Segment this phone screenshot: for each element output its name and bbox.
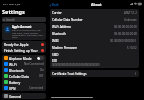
staticText: General	[9, 94, 44, 98]
staticText: 5.10.02	[127, 46, 137, 50]
other: Bluetooth	[4, 68, 8, 72]
staticText: IMEI	[52, 39, 59, 43]
staticText: Certificate Trust Settings	[52, 72, 87, 76]
button[interactable]: VPN	[2, 85, 46, 91]
staticText: Sign in to access iCloud, the App Store,…	[12, 29, 44, 38]
button[interactable]: IMEI	[50, 37, 139, 44]
other: Airplane Mode	[4, 56, 8, 60]
staticText: 9:41 Mon 9 Jun	[3, 2, 21, 5]
staticText: Bluetooth	[9, 68, 40, 72]
staticText: AT&T 51.2	[124, 11, 137, 15]
button[interactable]: Bluetooth	[2, 67, 46, 73]
button[interactable]: Cellular Data	[2, 73, 46, 79]
staticText: 00:00:00:00:00:00	[114, 32, 137, 36]
staticText: Cellular Data Number	[52, 18, 83, 22]
staticText: Wi-Fi Address	[52, 25, 71, 29]
staticText: On	[40, 68, 44, 72]
button[interactable]: Wi-Fi Address	[50, 23, 139, 30]
staticText: SEID	[52, 53, 59, 57]
staticText: Airplane Mode	[9, 56, 37, 60]
staticText: 00 000000 000000 0	[110, 39, 137, 43]
staticText: Bluetooth	[52, 32, 66, 36]
button[interactable]: Airplane Mode	[2, 55, 46, 61]
staticText: Apple Account	[12, 25, 32, 29]
button[interactable]: Apple Account	[2, 23, 46, 40]
staticText: Off	[39, 74, 44, 78]
staticText: 00:00:00:00:00:00	[114, 25, 137, 29]
button[interactable]: Modem Firmware	[50, 44, 139, 51]
other: Back	[49, 4, 52, 7]
staticText: About	[91, 2, 102, 7]
button[interactable]: Certificate Trust Settings	[50, 70, 139, 77]
button[interactable]: EID	[50, 58, 139, 68]
other: General	[4, 94, 8, 98]
staticText: Not Connected	[24, 62, 44, 66]
button[interactable]: General	[2, 93, 46, 99]
other: Battery	[4, 80, 8, 84]
staticText: Carrier	[52, 11, 62, 15]
staticText: Wi-Fi	[9, 62, 24, 66]
staticText: VPN	[9, 86, 29, 90]
button[interactable]: Search	[2, 17, 46, 22]
staticText: Ready for Apple Intelligence	[4, 42, 41, 46]
staticText: 00000000000000000000000000000000	[52, 63, 100, 67]
button[interactable]: Finish Setting up Your iPad	[4, 47, 44, 53]
button[interactable]: Bluetooth	[50, 30, 139, 37]
staticText: Cellular Data	[9, 74, 39, 78]
staticText: Connected	[29, 86, 44, 90]
other: VPN	[4, 86, 8, 90]
other: Wi-Fi	[4, 62, 8, 66]
button[interactable]: Wi-Fi	[2, 61, 46, 67]
button[interactable]: Battery	[2, 79, 46, 85]
staticText: Modem Firmware	[52, 46, 77, 50]
other: Cellular Data	[4, 74, 8, 78]
button[interactable]: Back	[49, 3, 59, 7]
staticText: Settings	[2, 8, 25, 16]
staticText: Battery	[9, 80, 44, 84]
staticText: Unknown	[124, 18, 137, 22]
staticText: Back	[52, 3, 59, 7]
button[interactable]: Cellular Data Number	[50, 16, 139, 23]
staticText: Finish Setting up Your iPad	[4, 48, 41, 52]
staticText: Search	[6, 18, 15, 22]
button[interactable]: Carrier	[50, 9, 139, 16]
button[interactable]: SEID	[50, 51, 139, 58]
button[interactable]: Ready for Apple Intelligence	[4, 41, 44, 47]
staticText: EID	[52, 59, 58, 63]
